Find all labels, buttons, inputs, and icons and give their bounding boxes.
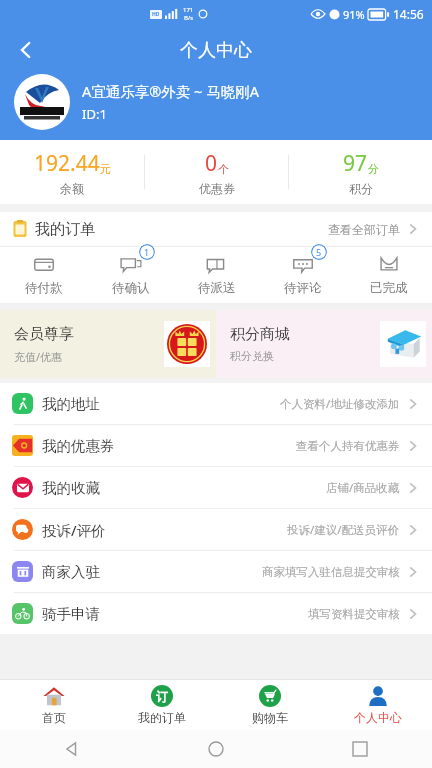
staticText: 已完成 bbox=[370, 280, 408, 296]
button[interactable]: Back bbox=[6, 30, 46, 70]
button[interactable]: 97 bbox=[289, 140, 432, 204]
staticText: 待评论 bbox=[284, 280, 322, 296]
staticText: 优惠券 bbox=[199, 181, 235, 196]
button[interactable]: 我的收藏 bbox=[0, 467, 432, 508]
staticText: 购物车 bbox=[252, 710, 288, 725]
staticText: 查看全部订单 bbox=[328, 222, 400, 237]
button[interactable]: 我的订单 bbox=[0, 212, 432, 246]
staticText: 个人资料/地址修改添加 bbox=[280, 396, 400, 412]
staticText: A宜通乐享®外卖 ~ 马晓刚A bbox=[82, 81, 259, 101]
staticText: 1 bbox=[144, 246, 150, 258]
button[interactable]: 待付款 bbox=[0, 247, 87, 303]
staticText: 0 bbox=[205, 149, 218, 178]
staticText: 元 bbox=[100, 162, 111, 176]
staticText: 91% bbox=[343, 7, 365, 22]
button[interactable]: 订 bbox=[108, 680, 216, 730]
staticText: 个 bbox=[218, 162, 229, 176]
staticText: 余额 bbox=[60, 181, 84, 196]
other: Recents bbox=[353, 742, 367, 756]
button[interactable]: 购物车 bbox=[216, 680, 324, 730]
staticText: 积分商城 bbox=[230, 325, 290, 344]
staticText: 待付款 bbox=[25, 280, 63, 296]
staticText: 171 bbox=[183, 6, 194, 14]
staticText: 分 bbox=[368, 162, 379, 176]
staticText: 个人中心 bbox=[180, 39, 252, 62]
button[interactable]: 我的优惠券 bbox=[0, 425, 432, 466]
staticText: 积分兑换 bbox=[230, 349, 274, 363]
staticText: 投诉/评价 bbox=[42, 520, 106, 540]
staticText: 我的订单 bbox=[138, 710, 186, 725]
other: Back bbox=[64, 741, 80, 757]
button[interactable]: 投诉/评价 bbox=[0, 509, 432, 550]
button[interactable]: 会员尊享 bbox=[0, 310, 216, 378]
other: Home bbox=[208, 741, 224, 757]
staticText: 14:56 bbox=[393, 6, 424, 22]
staticText: 填写资料提交审核 bbox=[308, 607, 400, 621]
button[interactable]: 待派送 bbox=[174, 247, 260, 303]
staticText: 待确认 bbox=[112, 280, 150, 296]
staticText: 我的优惠券 bbox=[42, 437, 115, 455]
button[interactable]: 首页 bbox=[0, 680, 108, 730]
staticText: 97 bbox=[343, 149, 368, 178]
staticText: 积分 bbox=[349, 181, 373, 196]
staticText: 5 bbox=[316, 246, 322, 258]
button[interactable]: 骑手申请 bbox=[0, 593, 432, 634]
staticText: 商家入驻 bbox=[42, 563, 100, 581]
button[interactable]: 1 bbox=[87, 247, 174, 303]
staticText: 查看个人持有优惠券 bbox=[296, 439, 400, 453]
staticText: ID:1 bbox=[82, 105, 107, 123]
staticText: 充值/优惠 bbox=[14, 349, 63, 364]
staticText: 首页 bbox=[42, 710, 66, 725]
staticText: HD bbox=[152, 11, 160, 18]
staticText: 投诉/建议/配送员评价 bbox=[287, 522, 400, 538]
button[interactable]: A宜通乐享®外卖 ~ 马晓刚A bbox=[14, 74, 418, 130]
staticText: 订 bbox=[156, 689, 168, 704]
button[interactable]: 已完成 bbox=[346, 247, 432, 303]
button[interactable]: 积分商城 bbox=[216, 310, 432, 378]
button[interactable]: 0 bbox=[145, 140, 288, 204]
button[interactable]: 商家入驻 bbox=[0, 551, 432, 592]
staticText: B/s bbox=[184, 14, 194, 22]
staticText: 待派送 bbox=[198, 280, 236, 296]
staticText: 骑手申请 bbox=[42, 605, 100, 623]
staticText: 店铺/商品收藏 bbox=[326, 480, 400, 496]
button[interactable]: 5 bbox=[260, 247, 346, 303]
staticText: 我的地址 bbox=[42, 395, 100, 413]
staticText: 商家填写入驻信息提交审核 bbox=[262, 565, 400, 579]
staticText: 我的订单 bbox=[35, 220, 95, 239]
staticText: 我的收藏 bbox=[42, 479, 100, 497]
button[interactable]: 我的地址 bbox=[0, 383, 432, 424]
staticText: 192.44 bbox=[34, 149, 100, 178]
staticText: 会员尊享 bbox=[14, 325, 74, 344]
staticText: 个人中心 bbox=[354, 710, 402, 725]
button[interactable]: 192.44 bbox=[0, 140, 144, 204]
button[interactable]: 个人中心 bbox=[324, 680, 432, 730]
